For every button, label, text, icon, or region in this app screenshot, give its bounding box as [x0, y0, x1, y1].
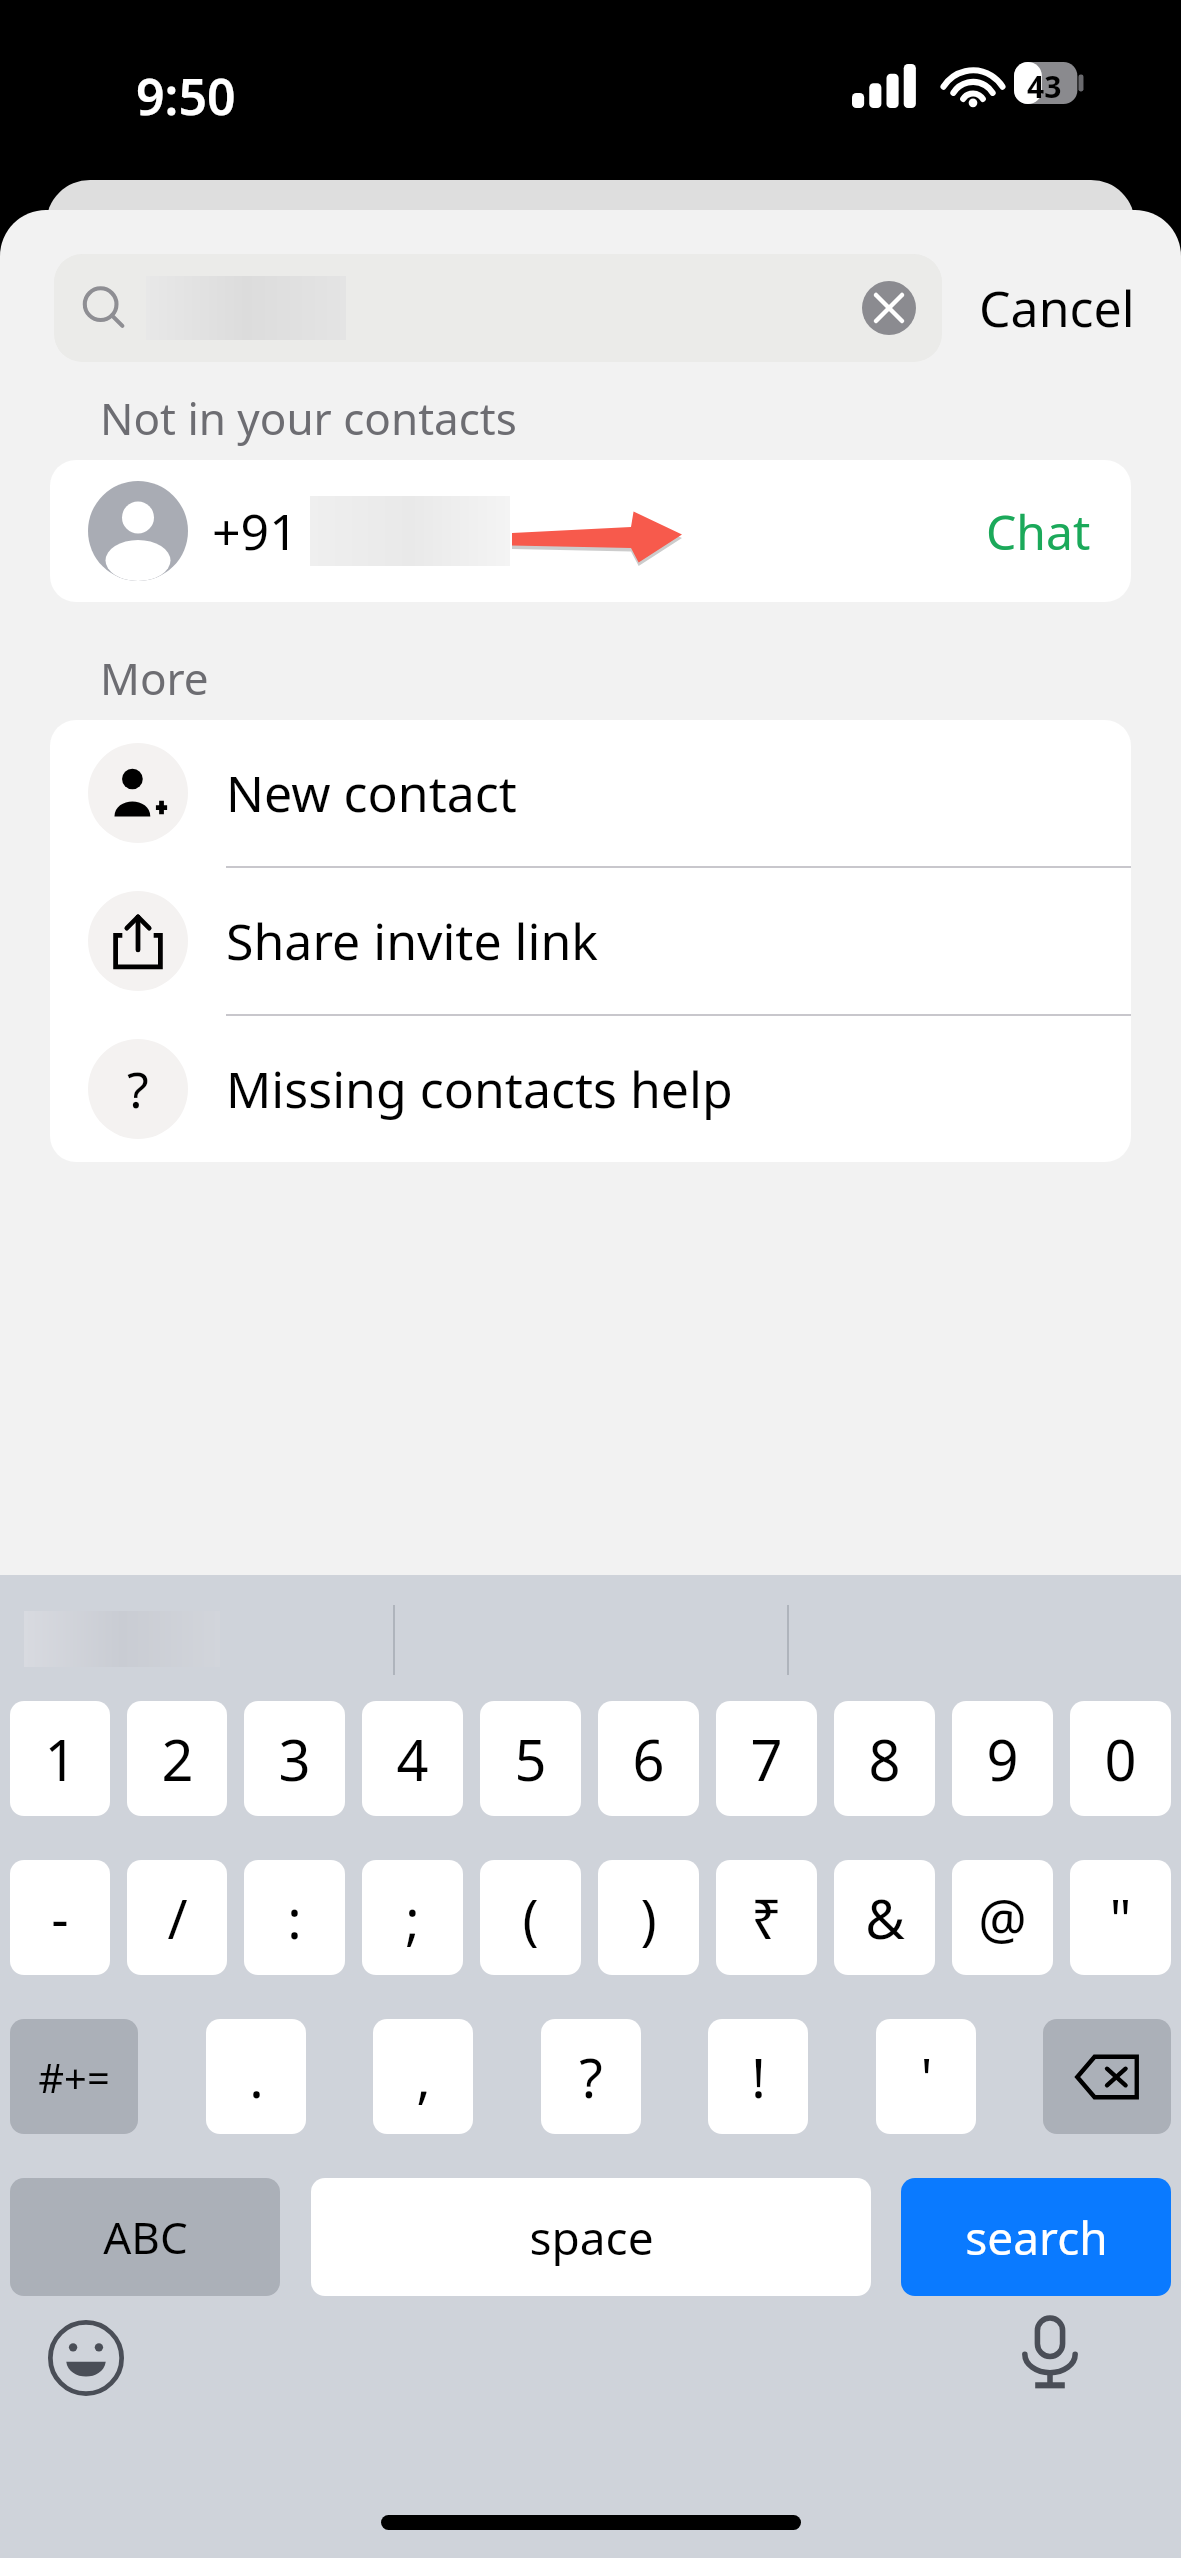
- button[interactable]: search: [901, 2178, 1171, 2296]
- staticText: 5: [514, 1721, 547, 1797]
- staticText: 8: [868, 1721, 901, 1797]
- staticText: More: [100, 648, 209, 708]
- button[interactable]: ,: [373, 2019, 473, 2134]
- staticText: 1: [44, 1721, 77, 1797]
- staticText: ': [920, 2040, 933, 2114]
- button[interactable]: !: [708, 2019, 808, 2134]
- staticText: 0: [1104, 1721, 1137, 1797]
- staticText: (: [522, 1881, 539, 1955]
- button[interactable]: 9: [952, 1701, 1053, 1816]
- button[interactable]: Chat: [986, 499, 1091, 564]
- button[interactable]: 1: [10, 1701, 110, 1816]
- button[interactable]: Backspace: [1043, 2019, 1171, 2134]
- button[interactable]: +91: [50, 460, 1131, 602]
- staticText: 9:50: [136, 62, 236, 130]
- button[interactable]: (: [480, 1860, 581, 1975]
- button[interactable]: 5: [480, 1701, 581, 1816]
- button[interactable]: 4: [362, 1701, 463, 1816]
- staticText: ": [1109, 1881, 1132, 1955]
- staticText: New contact: [226, 759, 517, 827]
- button[interactable]: :: [244, 1860, 345, 1975]
- button[interactable]: &: [834, 1860, 935, 1975]
- staticText: ,: [416, 2040, 431, 2114]
- button[interactable]: ₹: [716, 1860, 817, 1975]
- staticText: -: [51, 1881, 69, 1955]
- button[interactable]: .: [206, 2019, 306, 2134]
- staticText: /: [167, 1881, 188, 1955]
- button[interactable]: Dictation: [1008, 2310, 1092, 2394]
- button[interactable]: 8: [834, 1701, 935, 1816]
- staticText: ?: [127, 1055, 149, 1123]
- button[interactable]: /: [127, 1860, 227, 1975]
- staticText: .: [249, 2040, 264, 2114]
- staticText: ?: [579, 2040, 603, 2114]
- button[interactable]: ABC: [10, 2178, 280, 2296]
- staticText: #+=: [38, 2050, 110, 2104]
- button[interactable]: Clear text: [862, 281, 916, 335]
- staticText: ₹: [751, 1881, 782, 1955]
- staticText: 6: [632, 1721, 665, 1797]
- staticText: Cancel: [979, 274, 1135, 342]
- staticText: +91: [212, 497, 298, 565]
- button[interactable]: 0: [1070, 1701, 1171, 1816]
- staticText: @: [978, 1881, 1027, 1955]
- staticText: ABC: [103, 2207, 188, 2267]
- staticText: 43: [1027, 66, 1062, 107]
- button[interactable]: #+=: [10, 2019, 138, 2134]
- button[interactable]: Emoji keyboard: [44, 2316, 128, 2400]
- staticText: search: [965, 2206, 1108, 2269]
- button[interactable]: ': [876, 2019, 976, 2134]
- staticText: 7: [750, 1721, 783, 1797]
- staticText: ;: [405, 1881, 420, 1955]
- staticText: 2: [161, 1721, 194, 1797]
- staticText: :: [287, 1881, 302, 1955]
- button[interactable]: 3: [244, 1701, 345, 1816]
- staticText: 3: [278, 1721, 311, 1797]
- button[interactable]: Clear text: [54, 254, 942, 362]
- button[interactable]: Share invite link: [50, 868, 1131, 1016]
- staticText: !: [751, 2040, 766, 2114]
- button[interactable]: @: [952, 1860, 1053, 1975]
- staticText: &: [865, 1881, 905, 1955]
- button[interactable]: New contact: [50, 720, 1131, 868]
- button[interactable]: ?: [50, 1016, 1131, 1162]
- staticText: 9: [986, 1721, 1019, 1797]
- button[interactable]: 6: [598, 1701, 699, 1816]
- button[interactable]: ": [1070, 1860, 1171, 1975]
- staticText: Missing contacts help: [226, 1055, 733, 1123]
- button[interactable]: ): [598, 1860, 699, 1975]
- staticText: 4: [396, 1721, 429, 1797]
- button[interactable]: Cancel: [973, 264, 1141, 352]
- staticText: ): [640, 1881, 657, 1955]
- staticText: Not in your contacts: [100, 388, 517, 448]
- button[interactable]: -: [10, 1860, 110, 1975]
- button[interactable]: ;: [362, 1860, 463, 1975]
- button[interactable]: space: [311, 2178, 871, 2296]
- staticText: space: [529, 2206, 654, 2269]
- button[interactable]: 7: [716, 1701, 817, 1816]
- staticText: Share invite link: [226, 907, 598, 975]
- button[interactable]: 2: [127, 1701, 227, 1816]
- button[interactable]: ?: [541, 2019, 641, 2134]
